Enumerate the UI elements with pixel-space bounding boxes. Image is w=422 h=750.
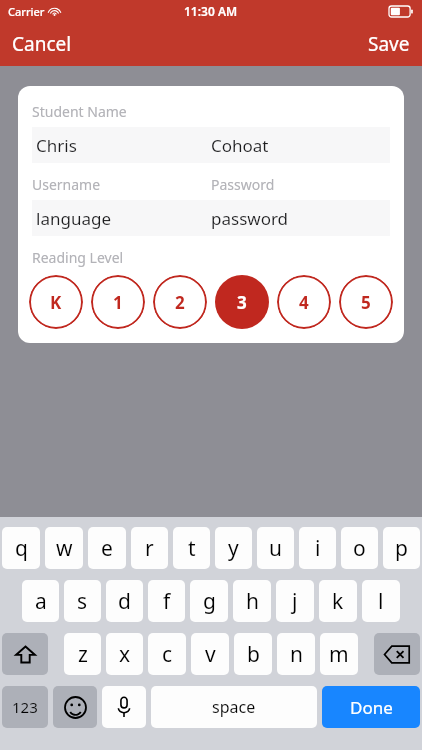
button[interactable]: Dictation bbox=[102, 686, 146, 728]
button[interactable]: k bbox=[319, 580, 357, 622]
button[interactable]: Done bbox=[322, 686, 420, 728]
button[interactable]: j bbox=[276, 580, 314, 622]
staticText: 11:30 AM bbox=[184, 3, 238, 19]
button[interactable]: e bbox=[88, 527, 126, 569]
staticText: Cancel bbox=[12, 31, 72, 57]
staticText: c bbox=[162, 640, 173, 669]
staticText: f bbox=[163, 587, 171, 616]
button[interactable]: Emoji bbox=[53, 686, 97, 728]
button[interactable]: v bbox=[191, 633, 229, 675]
staticText: 2 bbox=[175, 291, 185, 314]
staticText: Chris bbox=[36, 134, 77, 157]
button[interactable]: a bbox=[22, 580, 59, 622]
button[interactable]: h bbox=[233, 580, 271, 622]
staticText: p bbox=[395, 534, 408, 563]
button[interactable]: 1 bbox=[91, 275, 145, 329]
button[interactable]: g bbox=[190, 580, 228, 622]
button[interactable]: 2 bbox=[153, 275, 207, 329]
staticText: b bbox=[247, 640, 260, 669]
staticText: Cohoat bbox=[211, 134, 269, 157]
button[interactable]: 3 bbox=[215, 275, 269, 329]
staticText: m bbox=[329, 640, 349, 669]
button[interactable]: 123 bbox=[2, 686, 48, 728]
button[interactable]: y bbox=[215, 527, 252, 569]
staticText: n bbox=[290, 640, 303, 669]
button[interactable]: 4 bbox=[277, 275, 331, 329]
staticText: y bbox=[228, 534, 239, 563]
staticText: Reading Level bbox=[32, 248, 124, 267]
staticText: z bbox=[78, 640, 88, 669]
staticText: h bbox=[246, 587, 259, 616]
staticText: Done bbox=[350, 696, 393, 719]
staticText: 3 bbox=[237, 291, 247, 314]
staticText: Password bbox=[211, 175, 275, 194]
staticText: l bbox=[378, 587, 384, 616]
button[interactable]: language bbox=[32, 200, 211, 236]
button[interactable]: z bbox=[64, 633, 101, 675]
staticText: w bbox=[56, 534, 73, 563]
button[interactable]: f bbox=[148, 580, 185, 622]
staticText: K bbox=[50, 291, 62, 314]
button[interactable]: b bbox=[234, 633, 272, 675]
button[interactable]: q bbox=[2, 527, 40, 569]
staticText: g bbox=[203, 587, 216, 616]
staticText: d bbox=[118, 587, 131, 616]
staticText: e bbox=[101, 534, 113, 563]
button[interactable]: Backspace bbox=[374, 633, 420, 675]
staticText: r bbox=[145, 534, 154, 563]
button[interactable]: 5 bbox=[339, 275, 393, 329]
staticText: v bbox=[205, 640, 216, 669]
staticText: a bbox=[35, 587, 47, 616]
staticText: 4 bbox=[299, 291, 309, 314]
staticText: s bbox=[77, 587, 88, 616]
button[interactable]: Shift bbox=[2, 633, 48, 675]
button[interactable]: o bbox=[341, 527, 378, 569]
button[interactable]: password bbox=[211, 200, 390, 236]
button[interactable]: i bbox=[299, 527, 336, 569]
staticText: u bbox=[269, 534, 282, 563]
button[interactable]: l bbox=[362, 580, 400, 622]
staticText: i bbox=[315, 534, 321, 563]
staticText: o bbox=[353, 534, 366, 563]
staticText: language bbox=[36, 207, 111, 230]
staticText: Username bbox=[32, 175, 101, 194]
staticText: x bbox=[119, 640, 131, 669]
staticText: password bbox=[211, 207, 289, 230]
staticText: t bbox=[188, 534, 196, 563]
button[interactable]: Save bbox=[356, 25, 422, 63]
button[interactable]: Cancel bbox=[0, 25, 84, 63]
staticText: 1 bbox=[113, 291, 123, 314]
button[interactable]: u bbox=[257, 527, 294, 569]
staticText: 123 bbox=[12, 697, 38, 717]
staticText: k bbox=[332, 587, 344, 616]
staticText: 5 bbox=[361, 291, 371, 314]
button[interactable]: d bbox=[106, 580, 143, 622]
button[interactable]: x bbox=[106, 633, 143, 675]
button[interactable]: space bbox=[151, 686, 317, 728]
button[interactable]: m bbox=[320, 633, 358, 675]
staticText: j bbox=[292, 587, 298, 616]
button[interactable]: n bbox=[277, 633, 315, 675]
button[interactable]: Cohoat bbox=[211, 127, 390, 163]
staticText: Save bbox=[368, 31, 410, 57]
staticText: Student Name bbox=[32, 102, 127, 121]
staticText: space bbox=[212, 696, 256, 718]
staticText: Carrier bbox=[8, 4, 45, 19]
button[interactable]: s bbox=[64, 580, 101, 622]
button[interactable]: c bbox=[148, 633, 186, 675]
staticText: q bbox=[15, 534, 28, 563]
button[interactable]: Chris bbox=[32, 127, 211, 163]
button[interactable]: r bbox=[131, 527, 168, 569]
button[interactable]: w bbox=[45, 527, 83, 569]
button[interactable]: K bbox=[29, 275, 83, 329]
button[interactable]: p bbox=[383, 527, 420, 569]
button[interactable]: t bbox=[173, 527, 210, 569]
